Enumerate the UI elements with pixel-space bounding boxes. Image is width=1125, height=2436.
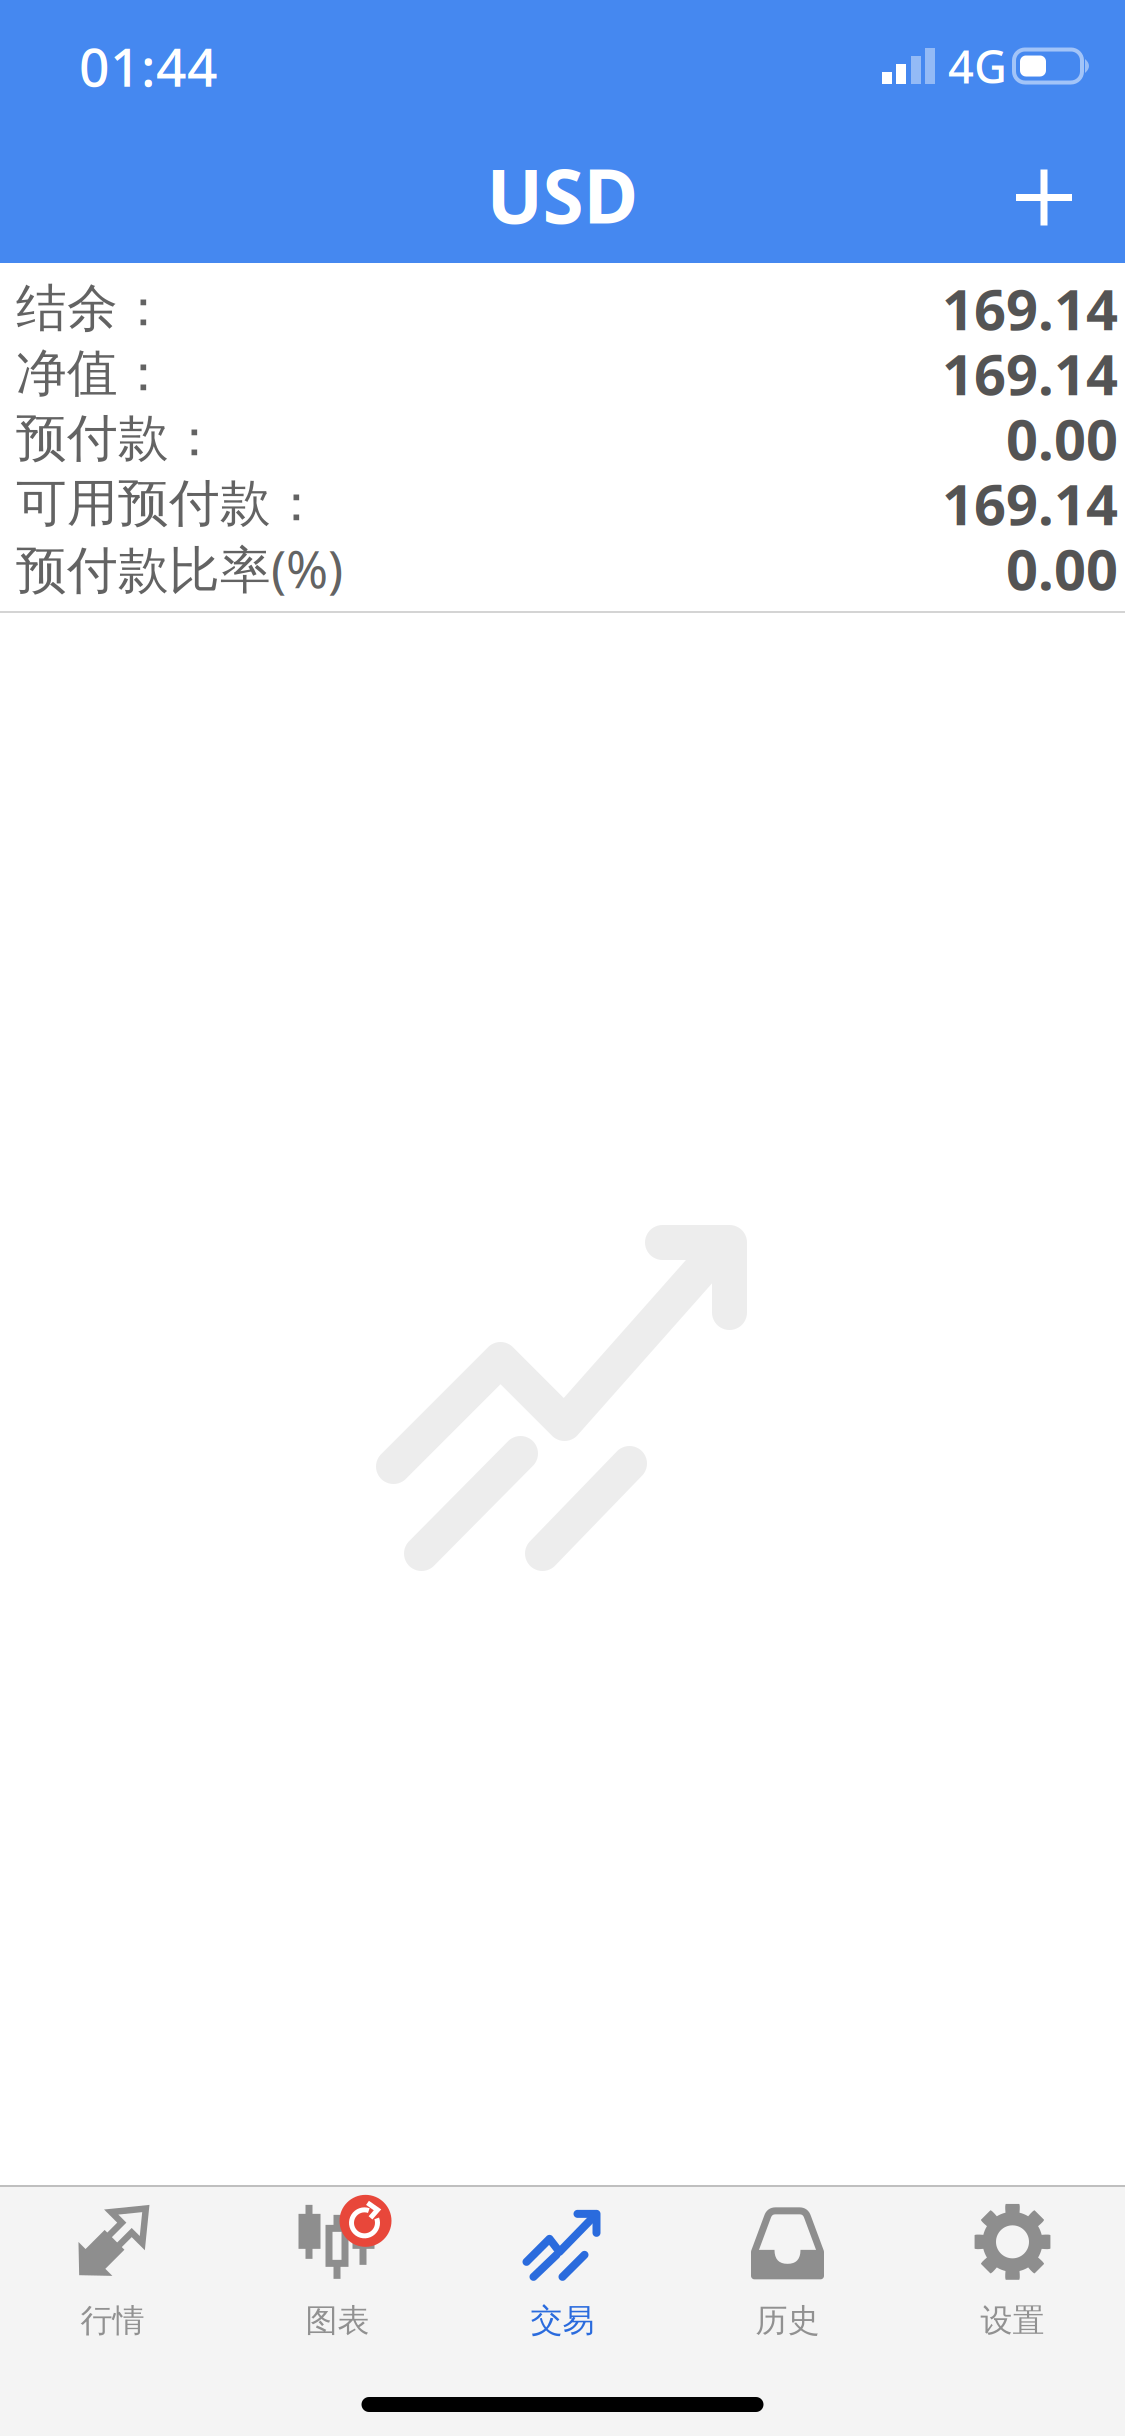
- staticText: 4G: [948, 36, 1007, 96]
- staticText: 净值：: [16, 342, 169, 405]
- staticText: USD: [486, 145, 638, 244]
- staticText: 0.00: [1006, 401, 1118, 476]
- staticText: 可用预付款：: [16, 472, 322, 535]
- button[interactable]: 图表: [225, 2193, 450, 2339]
- staticText: 历史: [755, 2301, 819, 2340]
- button[interactable]: 交易: [450, 2193, 675, 2339]
- staticText: 结余：: [16, 277, 169, 340]
- staticText: 交易: [530, 2301, 594, 2340]
- staticText: 预付款比率(%): [16, 535, 343, 602]
- staticText: 设置: [980, 2301, 1044, 2340]
- staticText: 01:44: [79, 31, 218, 101]
- staticText: 169.14: [942, 466, 1118, 541]
- button[interactable]: 历史: [675, 2193, 900, 2339]
- staticText: 0.00: [1006, 531, 1118, 606]
- button[interactable]: Add: [989, 132, 1099, 263]
- staticText: 预付款：: [16, 407, 220, 470]
- staticText: 169.14: [942, 336, 1118, 411]
- staticText: 图表: [305, 2301, 369, 2340]
- staticText: 169.14: [942, 271, 1118, 346]
- staticText: 行情: [80, 2301, 144, 2340]
- button[interactable]: 行情: [0, 2193, 225, 2339]
- button[interactable]: 设置: [900, 2193, 1125, 2339]
